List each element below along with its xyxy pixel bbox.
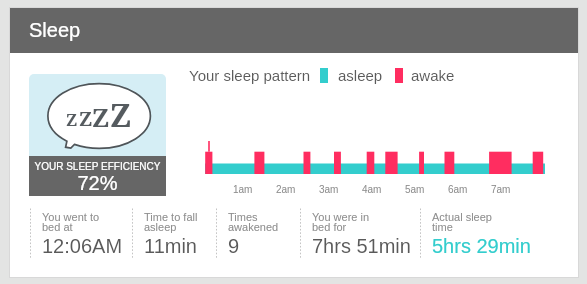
staticText: bed at xyxy=(42,221,73,233)
staticText: Sleep xyxy=(29,19,81,41)
staticText: 72% xyxy=(29,172,166,194)
staticText: Your sleep pattern xyxy=(189,67,311,84)
staticText: Z xyxy=(110,93,132,137)
staticText: 6am xyxy=(448,184,468,195)
staticText: Time to fall xyxy=(144,211,198,223)
staticText: 2am xyxy=(276,184,296,195)
staticText: time xyxy=(432,221,453,233)
button[interactable]: Times xyxy=(216,206,300,266)
staticText: 1am xyxy=(233,184,253,195)
staticText: You went to xyxy=(42,211,100,223)
staticText: Actual sleep xyxy=(432,211,492,223)
staticText: Z xyxy=(66,108,78,131)
staticText: 9 xyxy=(228,235,240,257)
button[interactable]: You went to xyxy=(30,206,132,266)
button[interactable]: Z xyxy=(29,74,166,196)
staticText: 4am xyxy=(362,184,382,195)
button[interactable]: Actual sleep xyxy=(420,206,540,266)
button[interactable]: You were in xyxy=(300,206,420,266)
staticText: 3am xyxy=(319,184,339,195)
staticText: 7hrs 51min xyxy=(312,235,411,257)
staticText: Z xyxy=(79,105,93,132)
staticText: 11min xyxy=(144,235,197,257)
staticText: Times xyxy=(228,211,258,223)
staticText: 12:06AM xyxy=(42,235,123,257)
staticText: awake xyxy=(411,67,455,84)
button[interactable]: Time to fall xyxy=(132,206,216,266)
staticText: 7am xyxy=(491,184,511,195)
staticText: 5hrs 29min xyxy=(432,235,531,257)
staticText: 5am xyxy=(405,184,425,195)
staticText: bed for xyxy=(312,221,347,233)
staticText: YOUR SLEEP EFFICIENCY xyxy=(29,161,166,172)
staticText: You were in xyxy=(312,211,370,223)
staticText: asleep xyxy=(338,67,383,84)
button[interactable]: Sleep xyxy=(9,7,579,53)
staticText: asleep xyxy=(144,221,177,233)
staticText: awakened xyxy=(228,221,279,233)
staticText: Z xyxy=(92,99,110,134)
